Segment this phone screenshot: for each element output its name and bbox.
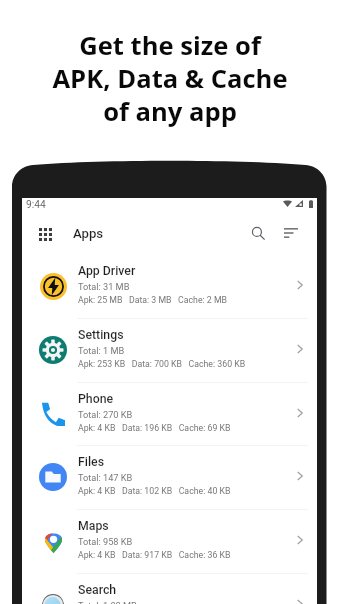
button[interactable]: Phone: [22, 382, 317, 446]
staticText: Apk: 25 MB Data: 3 MB Cache: 2 MB: [78, 295, 228, 305]
button[interactable]: Maps: [22, 509, 317, 573]
staticText: Get the size of APK, Data & Cache of any…: [0, 28, 340, 128]
button[interactable]: App Driver: [22, 254, 317, 318]
staticText: App Driver: [78, 264, 136, 278]
button[interactable]: Sort: [280, 223, 301, 243]
staticText: Apk: 4 KB Data: 917 KB Cache: 36 KB: [78, 550, 231, 560]
staticText: Total: 1 08 MB: [78, 600, 137, 604]
button[interactable]: Search: [248, 223, 268, 243]
staticText: Total: 1 MB: [78, 345, 125, 356]
staticText: Maps: [78, 519, 109, 533]
staticText: Search: [78, 583, 117, 597]
button[interactable]: Settings: [22, 318, 317, 382]
button[interactable]: Apps grid: [35, 224, 55, 244]
staticText: Phone: [78, 392, 114, 406]
staticText: 9:44: [26, 199, 46, 211]
button[interactable]: Search: [22, 573, 317, 604]
staticText: Total: 147 KB: [78, 472, 133, 483]
staticText: Apk: 253 KB Data: 700 KB Cache: 360 KB: [78, 359, 246, 369]
staticText: Settings: [78, 328, 124, 342]
staticText: Apk: 4 KB Data: 102 KB Cache: 40 KB: [78, 486, 231, 496]
staticText: Files: [78, 455, 105, 469]
staticText: Total: 270 KB: [78, 409, 133, 420]
staticText: Apps: [73, 226, 104, 241]
staticText: Total: 31 MB: [78, 281, 130, 292]
button[interactable]: Files: [22, 445, 317, 509]
staticText: Apk: 4 KB Data: 196 KB Cache: 69 KB: [78, 423, 231, 433]
staticText: Total: 958 KB: [78, 536, 133, 547]
